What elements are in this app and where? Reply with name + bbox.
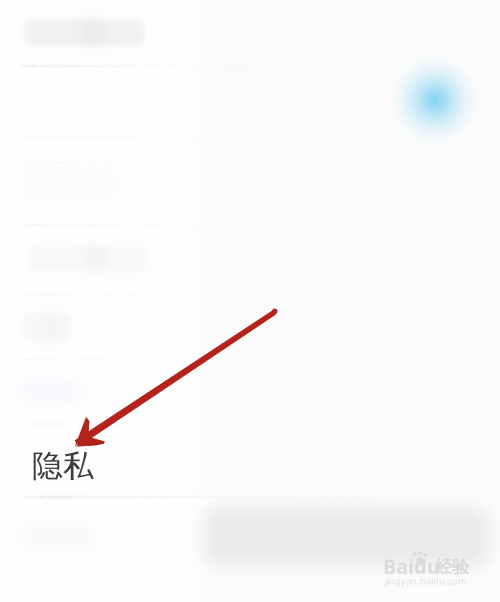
staticText: jingyan.baidu.com (385, 575, 467, 587)
staticText: Baidu (383, 553, 440, 579)
staticText: 隐私 (32, 447, 94, 485)
staticText: 经验 (435, 556, 469, 578)
button[interactable]: 隐私 (0, 437, 196, 495)
